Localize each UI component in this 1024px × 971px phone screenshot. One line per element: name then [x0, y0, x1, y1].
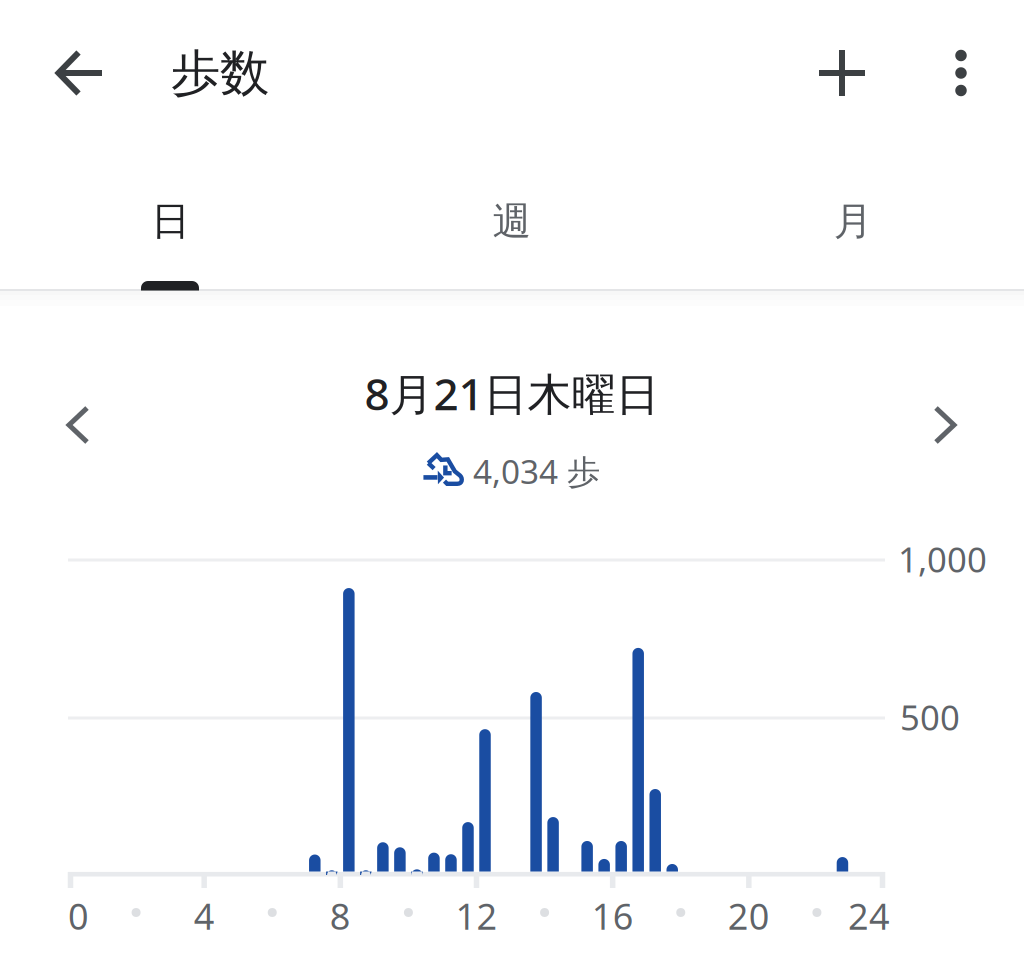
staticText: 4,034 歩: [473, 449, 600, 493]
button[interactable]: Next day: [900, 380, 990, 470]
staticText: 16: [592, 892, 634, 940]
staticText: 4: [194, 892, 215, 940]
staticText: 12: [455, 892, 497, 940]
staticText: 24: [848, 892, 890, 940]
staticText: 日: [151, 197, 190, 245]
staticText: 歩数: [171, 43, 269, 104]
button[interactable]: 月: [683, 146, 1024, 290]
button[interactable]: Add: [792, 23, 892, 123]
staticText: 20: [728, 892, 770, 940]
staticText: 月: [834, 197, 873, 245]
button[interactable]: More options: [916, 23, 1006, 123]
button[interactable]: Back: [29, 23, 129, 123]
button[interactable]: 週: [341, 146, 683, 290]
button[interactable]: 日: [0, 146, 341, 290]
staticText: 500: [900, 694, 960, 740]
staticText: 0: [68, 892, 89, 940]
staticText: 8月21日木曜日: [364, 364, 659, 422]
button[interactable]: Previous day: [33, 380, 123, 470]
staticText: 8: [330, 892, 351, 940]
staticText: 1,000: [898, 536, 987, 582]
staticText: 週: [492, 197, 531, 245]
